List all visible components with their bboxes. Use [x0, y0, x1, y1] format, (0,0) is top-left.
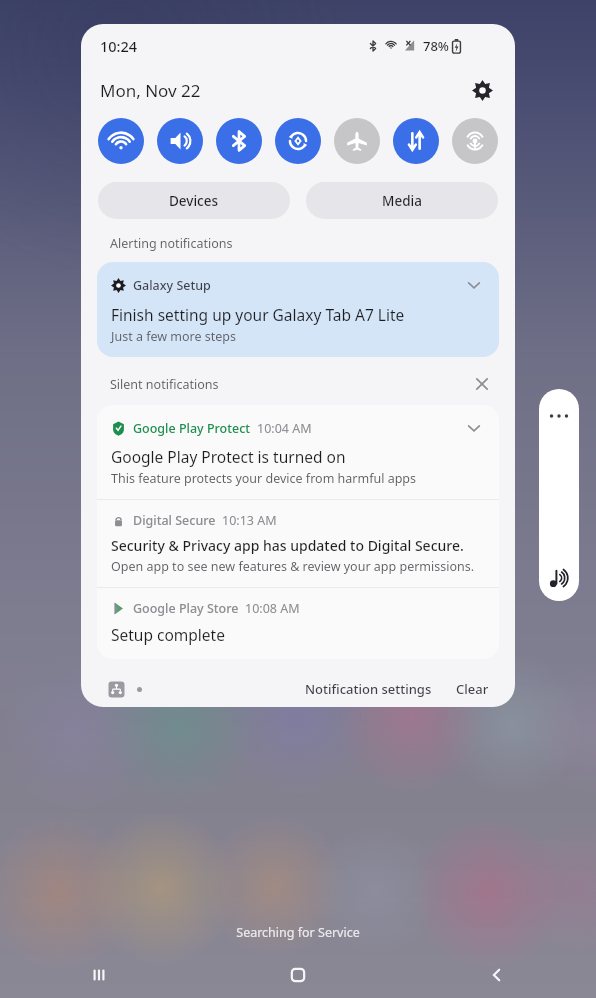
- staticText: Just a few more steps: [111, 328, 237, 345]
- staticText: 78%: [423, 37, 449, 55]
- staticText: 10:24: [100, 36, 138, 56]
- staticText: 10:08 AM: [245, 600, 300, 617]
- staticText: Notification settings: [305, 680, 432, 698]
- staticText: Clear: [456, 680, 489, 698]
- other: Digital Secure: [111, 513, 126, 528]
- button[interactable]: Mobile data: [393, 118, 439, 164]
- button[interactable]: Clear: [452, 676, 493, 702]
- staticText: Setup complete: [111, 624, 225, 645]
- staticText: Silent notifications: [110, 376, 219, 393]
- staticText: Finish setting up your Galaxy Tab A7 Lit…: [111, 304, 405, 325]
- button[interactable]: Media: [306, 182, 498, 219]
- staticText: 10:13 AM: [222, 512, 277, 529]
- button[interactable]: Home: [198, 952, 397, 998]
- button[interactable]: Edge panel: [539, 389, 579, 601]
- staticText: Google Play Store: [133, 600, 239, 617]
- button[interactable]: Recents: [0, 952, 198, 998]
- staticText: Galaxy Setup: [133, 277, 211, 294]
- other: Galaxy Setup: [111, 278, 126, 293]
- staticText: Digital Secure: [133, 512, 216, 529]
- button[interactable]: Mobile hotspot: [452, 118, 498, 164]
- button[interactable]: Back: [397, 952, 596, 998]
- button[interactable]: Notification settings: [301, 676, 436, 702]
- staticText: Google Play Protect: [133, 420, 251, 437]
- staticText: 10:04 AM: [257, 420, 312, 437]
- staticText: Searching for Service: [0, 924, 596, 941]
- staticText: Open app to see new features & review yo…: [111, 558, 475, 575]
- button[interactable]: Sound: [157, 118, 203, 164]
- button[interactable]: Bluetooth: [216, 118, 262, 164]
- staticText: Media: [382, 192, 422, 210]
- button[interactable]: Galaxy Setup: [97, 262, 499, 357]
- staticText: Devices: [169, 192, 219, 210]
- button[interactable]: Digital Secure: [97, 500, 499, 587]
- button[interactable]: Auto rotate: [275, 118, 321, 164]
- button[interactable]: Expand: [463, 417, 485, 439]
- other: Google Play Store: [111, 601, 126, 616]
- staticText: This feature protects your device from h…: [111, 470, 417, 487]
- button[interactable]: Dismiss silent notifications: [469, 371, 495, 397]
- button[interactable]: Expand: [463, 274, 485, 296]
- other: Google Play Protect: [111, 421, 126, 436]
- staticText: Google Play Protect is turned on: [111, 446, 346, 467]
- button[interactable]: Google Play Store: [97, 588, 499, 659]
- button[interactable]: Settings: [465, 73, 499, 107]
- staticText: Alerting notifications: [110, 235, 233, 252]
- button[interactable]: Google Play Protect: [97, 405, 499, 499]
- button[interactable]: Airplane mode: [334, 118, 380, 164]
- button[interactable]: Notification history: [105, 678, 127, 700]
- button[interactable]: Devices: [98, 182, 290, 219]
- staticText: Mon, Nov 22: [100, 79, 201, 102]
- button[interactable]: Wi-Fi: [98, 118, 144, 164]
- staticText: Security & Privacy app has updated to Di…: [111, 536, 464, 555]
